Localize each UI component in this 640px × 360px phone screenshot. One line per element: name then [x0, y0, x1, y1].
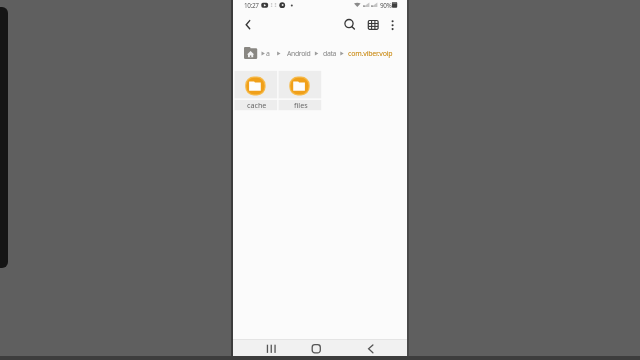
button[interactable] [279, 71, 322, 111]
button[interactable] [359, 340, 383, 356]
button[interactable] [263, 46, 272, 60]
staticText: a [266, 49, 270, 58]
staticText: cache [247, 100, 267, 110]
button[interactable] [305, 340, 329, 356]
staticText: 10:27 [244, 1, 259, 10]
button[interactable] [235, 71, 278, 111]
staticText: com.viber.voip [348, 49, 393, 59]
button[interactable] [241, 44, 259, 62]
staticText: data [323, 49, 337, 58]
staticText: files [294, 100, 308, 110]
button[interactable] [341, 15, 357, 32]
button[interactable] [259, 340, 283, 356]
button[interactable] [365, 15, 382, 32]
button[interactable] [346, 46, 394, 60]
button[interactable] [285, 46, 313, 60]
staticText: 90% [380, 1, 392, 10]
button[interactable] [241, 14, 258, 34]
button[interactable] [320, 46, 338, 60]
staticText: Android [287, 49, 311, 58]
button[interactable] [386, 15, 399, 32]
